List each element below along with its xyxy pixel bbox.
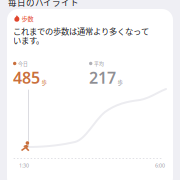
staticText: 今日 (18, 60, 28, 67)
staticText: 6:00 (155, 162, 165, 169)
staticText: 485 (13, 67, 40, 88)
staticText: 217 (89, 67, 116, 88)
staticText: 毎日のハイライト (8, 0, 79, 8)
staticText: 平均 (94, 60, 104, 67)
staticText: 歩数 (21, 14, 33, 23)
staticText: これまでの歩数は通常より多くなって (13, 25, 149, 37)
staticText: います。 (13, 34, 44, 46)
staticText: 歩 (41, 78, 46, 86)
staticText: 歩 (117, 78, 122, 86)
staticText: 1:30 (19, 162, 29, 169)
